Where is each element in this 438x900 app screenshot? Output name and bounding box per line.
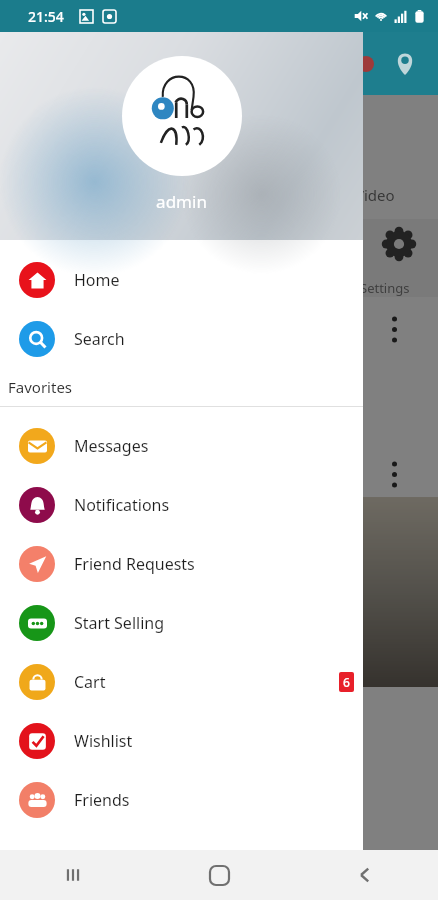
button[interactable]: Friend Requests xyxy=(0,534,363,593)
staticText: Friend Requests xyxy=(74,553,195,575)
staticText: Wishlist xyxy=(74,730,133,752)
button[interactable]: Home xyxy=(0,250,363,309)
button[interactable]: Search xyxy=(0,309,363,368)
button[interactable]: Home xyxy=(196,852,242,898)
staticText: Favorites xyxy=(8,377,73,397)
staticText: Home xyxy=(74,269,120,291)
staticText: 6 xyxy=(343,674,350,690)
button[interactable]: Notifications xyxy=(0,475,363,534)
staticText: Messages xyxy=(74,435,149,457)
staticText: Start Selling xyxy=(74,612,165,634)
staticText: 21:54 xyxy=(28,7,64,26)
button[interactable]: Cart xyxy=(0,652,363,711)
staticText: admin xyxy=(156,190,207,213)
staticText: Video xyxy=(355,185,395,205)
staticText: Notifications xyxy=(74,494,170,516)
staticText: Settings xyxy=(360,279,410,297)
button[interactable]: Wishlist xyxy=(0,711,363,770)
button[interactable]: Friends xyxy=(0,770,363,829)
button[interactable]: Recent apps xyxy=(50,852,96,898)
staticText: Search xyxy=(74,328,125,350)
staticText: Friends xyxy=(74,789,130,811)
button[interactable]: Messages xyxy=(0,416,363,475)
button[interactable]: Back xyxy=(342,852,388,898)
staticText: Cart xyxy=(74,671,106,693)
button[interactable]: Start Selling xyxy=(0,593,363,652)
